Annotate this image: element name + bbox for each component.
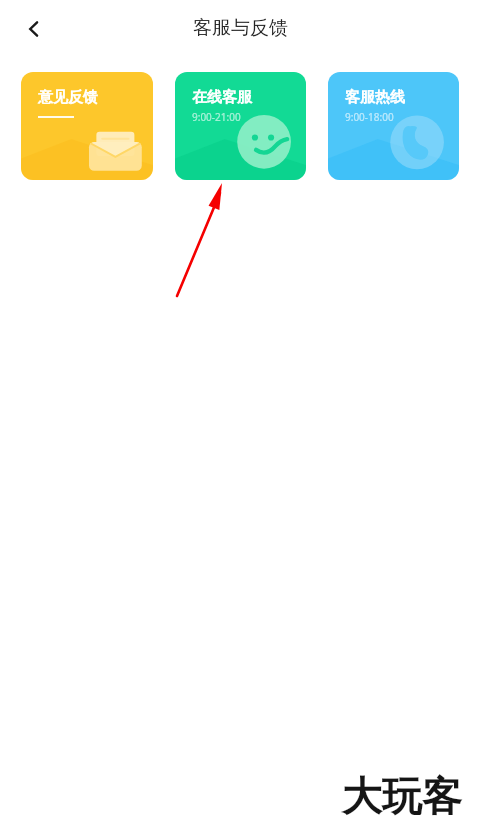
button[interactable]: 在线客服 [175, 72, 306, 180]
button[interactable]: Back [12, 7, 56, 51]
staticText: 大玩客 [342, 771, 462, 821]
staticText: 在线客服 [192, 88, 252, 107]
staticText: 客服与反馈 [193, 16, 288, 40]
staticText: 意见反馈 [38, 88, 98, 107]
button[interactable]: 客服热线 [328, 72, 459, 180]
button[interactable]: 意见反馈 [21, 72, 153, 180]
staticText: 9:00-18:00 [345, 110, 394, 124]
staticText: 9:00-21:00 [192, 110, 241, 124]
staticText: 客服热线 [345, 88, 405, 107]
